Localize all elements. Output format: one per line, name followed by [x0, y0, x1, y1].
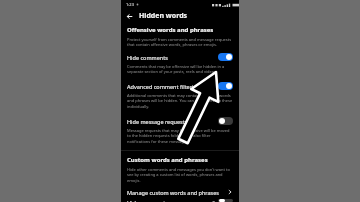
button[interactable]	[218, 199, 233, 202]
staticText: Comments that may be offensive will be h…	[127, 64, 233, 74]
button[interactable]: Advanced comment filtering	[121, 79, 239, 93]
button[interactable]: Hide comments	[121, 199, 239, 202]
staticText: Message requests that may be offensive w…	[127, 128, 233, 144]
staticText: Protect yourself from comments and messa…	[127, 37, 233, 47]
staticText: Custom words and phrases	[127, 156, 208, 164]
button[interactable]	[218, 82, 233, 90]
button[interactable]	[218, 53, 233, 61]
button[interactable]: Hide comments	[121, 50, 239, 64]
staticText: Offensive words and phrases	[127, 26, 214, 34]
button[interactable]: Hide message requests	[121, 114, 239, 128]
staticText: 1:23	[126, 2, 134, 7]
staticText: Additional comments that may contain off…	[127, 93, 233, 109]
staticText: Hide message requests	[127, 118, 218, 125]
button[interactable]	[218, 117, 233, 125]
staticText: Hide comments	[127, 54, 218, 61]
staticText: Manage custom words and phrases	[127, 189, 227, 196]
staticText: Hide other comments and messages you don…	[127, 167, 233, 183]
staticText: Hide comments	[127, 199, 218, 202]
button[interactable]: Back	[124, 11, 135, 22]
staticText: Hidden words	[139, 11, 188, 21]
button[interactable]: Manage custom words and phrases	[121, 185, 239, 199]
staticText: Advanced comment filtering	[127, 83, 218, 90]
